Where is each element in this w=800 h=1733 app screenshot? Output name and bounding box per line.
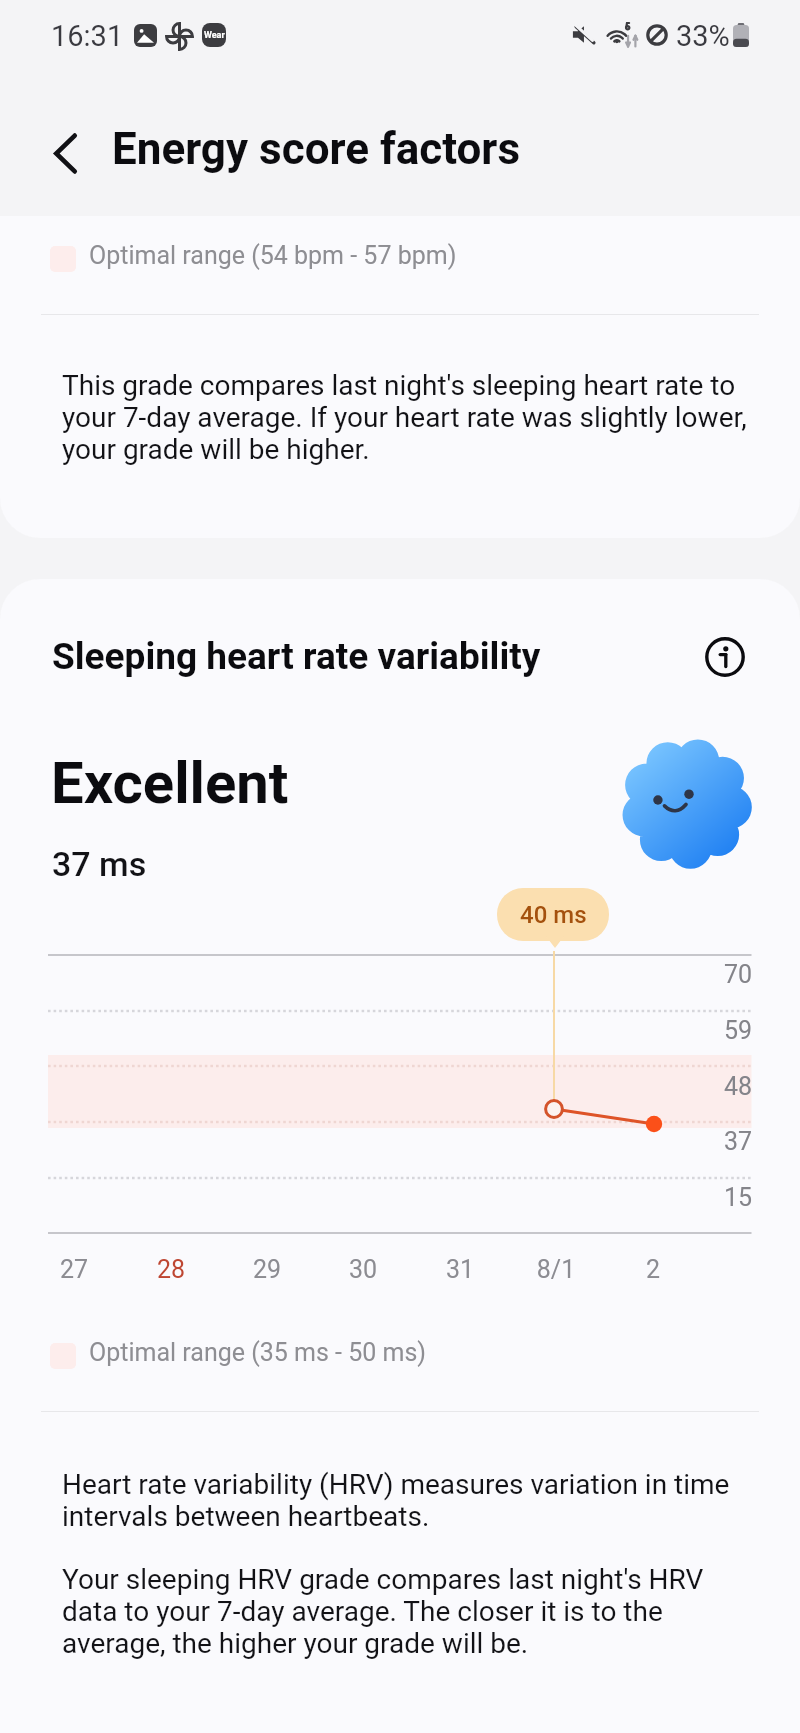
staticText: 33% — [676, 19, 730, 53]
staticText: 70 — [672, 960, 752, 989]
staticText: Your sleeping HRV grade compares last ni… — [62, 1563, 752, 1660]
staticText: Optimal range (54 bpm - 57 bpm) — [89, 241, 457, 270]
staticText: 8/1 — [516, 1255, 596, 1284]
staticText: 37 ms — [52, 844, 147, 884]
staticText: 16:31 — [51, 19, 124, 53]
staticText: Heart rate variability (HRV) measures va… — [62, 1468, 752, 1533]
staticText: 48 — [672, 1072, 752, 1101]
staticText: 30 — [323, 1255, 403, 1284]
staticText: 2 — [613, 1255, 693, 1284]
staticText: Excellent — [51, 749, 289, 817]
staticText: 59 — [672, 1016, 752, 1045]
staticText: 31 — [420, 1255, 500, 1284]
staticText: 27 — [34, 1255, 114, 1284]
staticText: Energy score factors — [112, 123, 521, 175]
staticText: 29 — [227, 1255, 307, 1284]
staticText: This grade compares last night's sleepin… — [62, 369, 752, 466]
staticText: Sleeping heart rate variability — [52, 635, 541, 678]
staticText: 40 ms — [520, 901, 587, 929]
staticText: 37 — [672, 1127, 752, 1156]
button[interactable]: Information — [699, 631, 751, 683]
button[interactable]: Back — [23, 111, 107, 195]
staticText: 28 — [131, 1255, 211, 1284]
staticText: 15 — [672, 1183, 752, 1212]
staticText: Wear — [204, 30, 225, 41]
staticText: Optimal range (35 ms - 50 ms) — [89, 1338, 427, 1367]
